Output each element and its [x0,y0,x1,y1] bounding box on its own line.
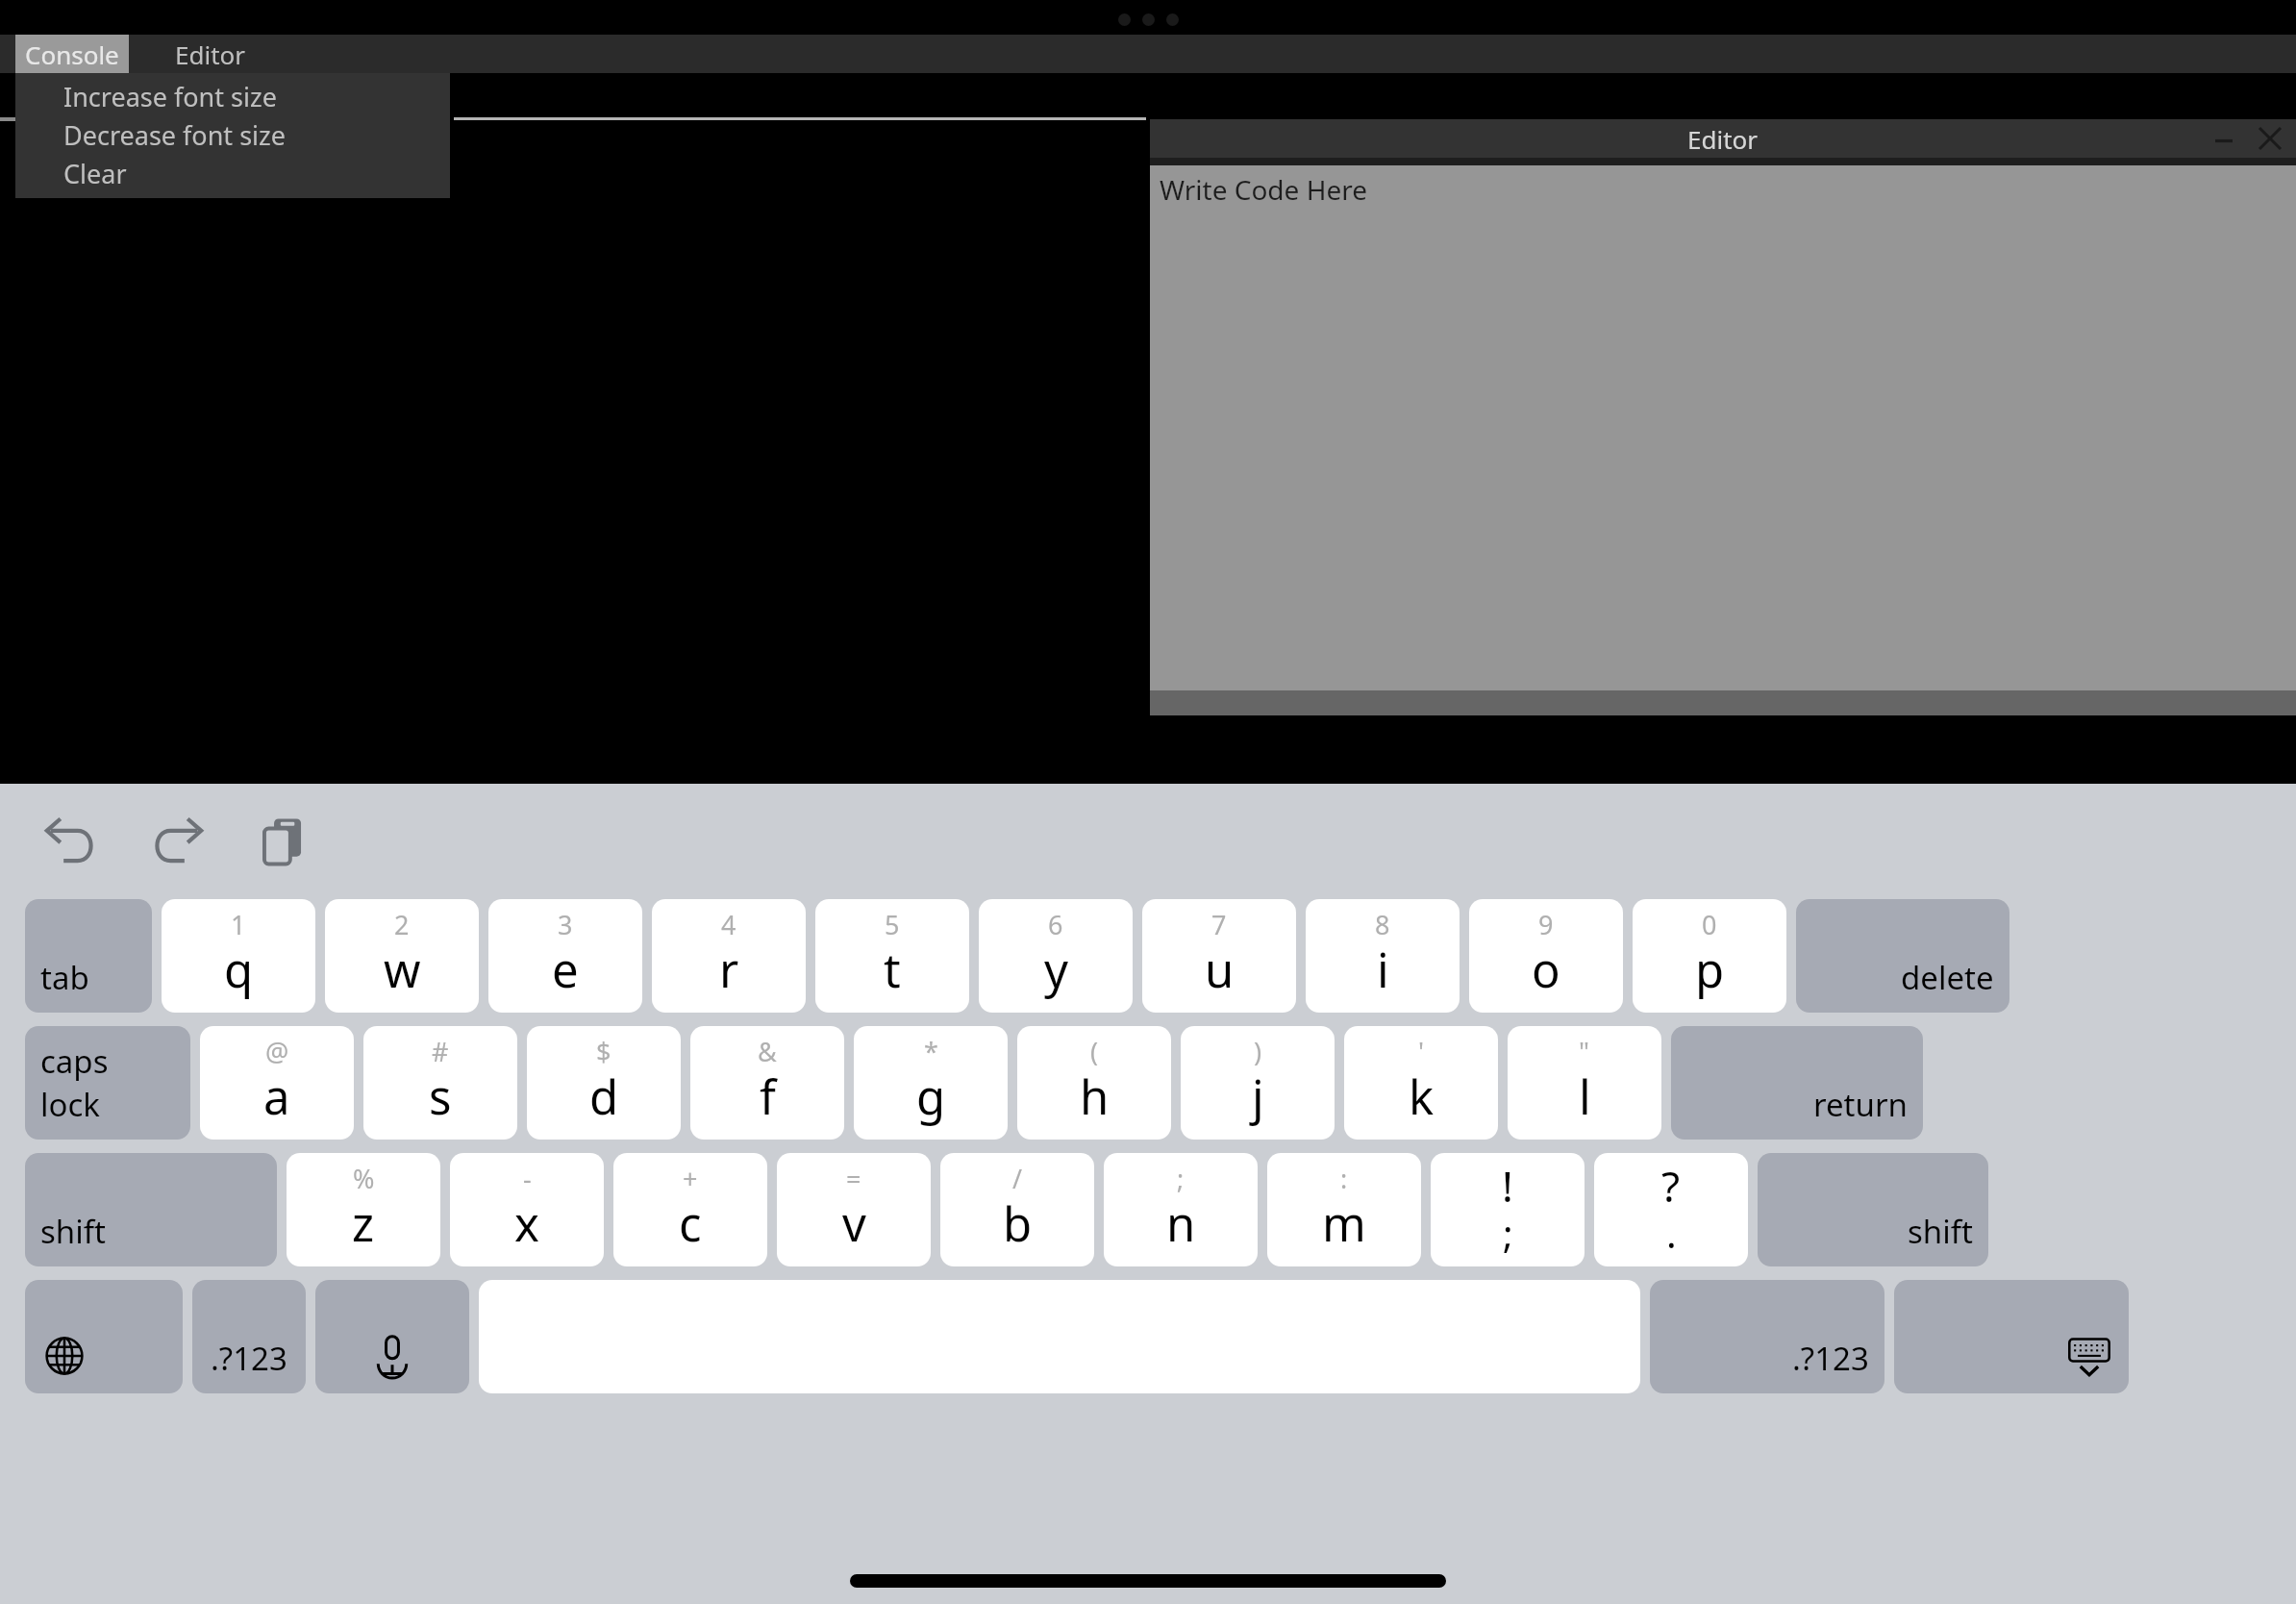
button[interactable]: & [690,1026,844,1140]
staticText: + [683,1161,698,1196]
button[interactable]: Minimize [2208,122,2240,155]
button[interactable]: 0 [1633,899,1786,1013]
staticText: n [1166,1191,1196,1256]
staticText: v [842,1191,866,1256]
staticText: shift [1908,1210,1973,1253]
staticText: Editor [1687,122,1759,156]
staticText: z [352,1191,375,1256]
button[interactable]: / [940,1153,1094,1266]
button[interactable]: 5 [815,899,969,1013]
staticText: % [353,1161,375,1196]
button[interactable]: = [777,1153,931,1266]
button[interactable]: 6 [979,899,1133,1013]
staticText: t [884,938,901,1002]
button[interactable]: $ [527,1026,681,1140]
staticText: y [1044,938,1068,1002]
button[interactable]: shift [1758,1153,1988,1266]
button[interactable]: 7 [1142,899,1296,1013]
button[interactable]: .?123 [192,1280,306,1393]
button[interactable]: Paste [246,805,319,878]
button[interactable]: return [1671,1026,1923,1140]
staticText: ' [1418,1034,1425,1069]
staticText: a [263,1065,290,1129]
staticText: / [1012,1161,1023,1196]
staticText: @ [265,1034,289,1069]
button[interactable]: - [450,1153,604,1266]
button[interactable]: " [1508,1026,1661,1140]
staticText: 5 [885,907,900,942]
staticText: caps lock [40,1040,175,1126]
button[interactable]: Close [2254,122,2286,155]
staticText: r [719,938,739,1002]
staticText: h [1080,1065,1110,1129]
button[interactable]: 8 [1306,899,1460,1013]
button[interactable]: Clear [63,154,450,192]
button[interactable]: Editor [165,35,256,73]
button[interactable]: caps lock [25,1026,190,1140]
button[interactable]: * [854,1026,1008,1140]
button[interactable]: Change keyboard [25,1280,183,1393]
button[interactable]: 1 [162,899,315,1013]
button[interactable]: shift [25,1153,277,1266]
staticText: m [1322,1191,1366,1256]
button[interactable]: 9 [1469,899,1623,1013]
staticText: return [1813,1083,1908,1126]
staticText: p [1695,938,1725,1002]
staticText: 0 [1702,907,1717,942]
button[interactable]: Dictate [315,1280,469,1393]
staticText: ! [1502,1157,1513,1215]
button[interactable]: % [287,1153,440,1266]
staticText: 6 [1048,907,1063,942]
button[interactable]: 2 [325,899,479,1013]
staticText: : [1340,1161,1348,1196]
button[interactable]: ? [1594,1153,1748,1266]
staticText: g [916,1065,946,1129]
button[interactable]: Increase font size [63,77,450,115]
staticText: 2 [394,907,410,942]
staticText: 1 [231,907,246,942]
button[interactable]: ' [1344,1026,1498,1140]
button[interactable]: # [363,1026,517,1140]
staticText: Clear [63,156,127,191]
button[interactable]: ( [1017,1026,1171,1140]
button[interactable]: Decrease font size [63,115,450,154]
button[interactable]: ! [1431,1153,1585,1266]
button[interactable]: ; [1104,1153,1258,1266]
button[interactable]: tab [25,899,152,1013]
staticText: " [1579,1034,1590,1069]
button[interactable]: Write Code Here [1150,165,2296,690]
staticText: f [760,1065,776,1129]
staticText: e [552,938,579,1002]
staticText: x [514,1191,539,1256]
button[interactable]: delete [1796,899,2009,1013]
staticText: delete [1901,956,1994,999]
staticText: 8 [1375,907,1390,942]
button[interactable]: Multitasking [1118,13,1179,26]
staticText: 9 [1538,907,1554,942]
button[interactable]: @ [200,1026,354,1140]
staticText: c [679,1191,702,1256]
staticText: o [1532,938,1560,1002]
button[interactable]: Console [15,35,129,73]
button[interactable]: Redo [140,805,213,878]
button[interactable]: 4 [652,899,806,1013]
button[interactable]: + [613,1153,767,1266]
staticText: # [432,1034,449,1069]
button[interactable]: .?123 [1650,1280,1884,1393]
staticText: Increase font size [63,79,277,114]
staticText: Write Code Here [1160,171,1367,208]
button[interactable]: ) [1181,1026,1335,1140]
staticText: l [1579,1065,1591,1129]
button[interactable]: : [1267,1153,1421,1266]
staticText: * [924,1034,938,1069]
staticText: shift [40,1210,106,1253]
button[interactable]: 3 [488,899,642,1013]
staticText: ? [1661,1157,1681,1215]
staticText: Editor [175,38,246,71]
staticText: d [589,1065,619,1129]
button[interactable]: Undo [35,805,108,878]
staticText: b [1003,1191,1033,1256]
button[interactable]: Hide keyboard [1894,1280,2129,1393]
staticText: . [1666,1207,1677,1259]
